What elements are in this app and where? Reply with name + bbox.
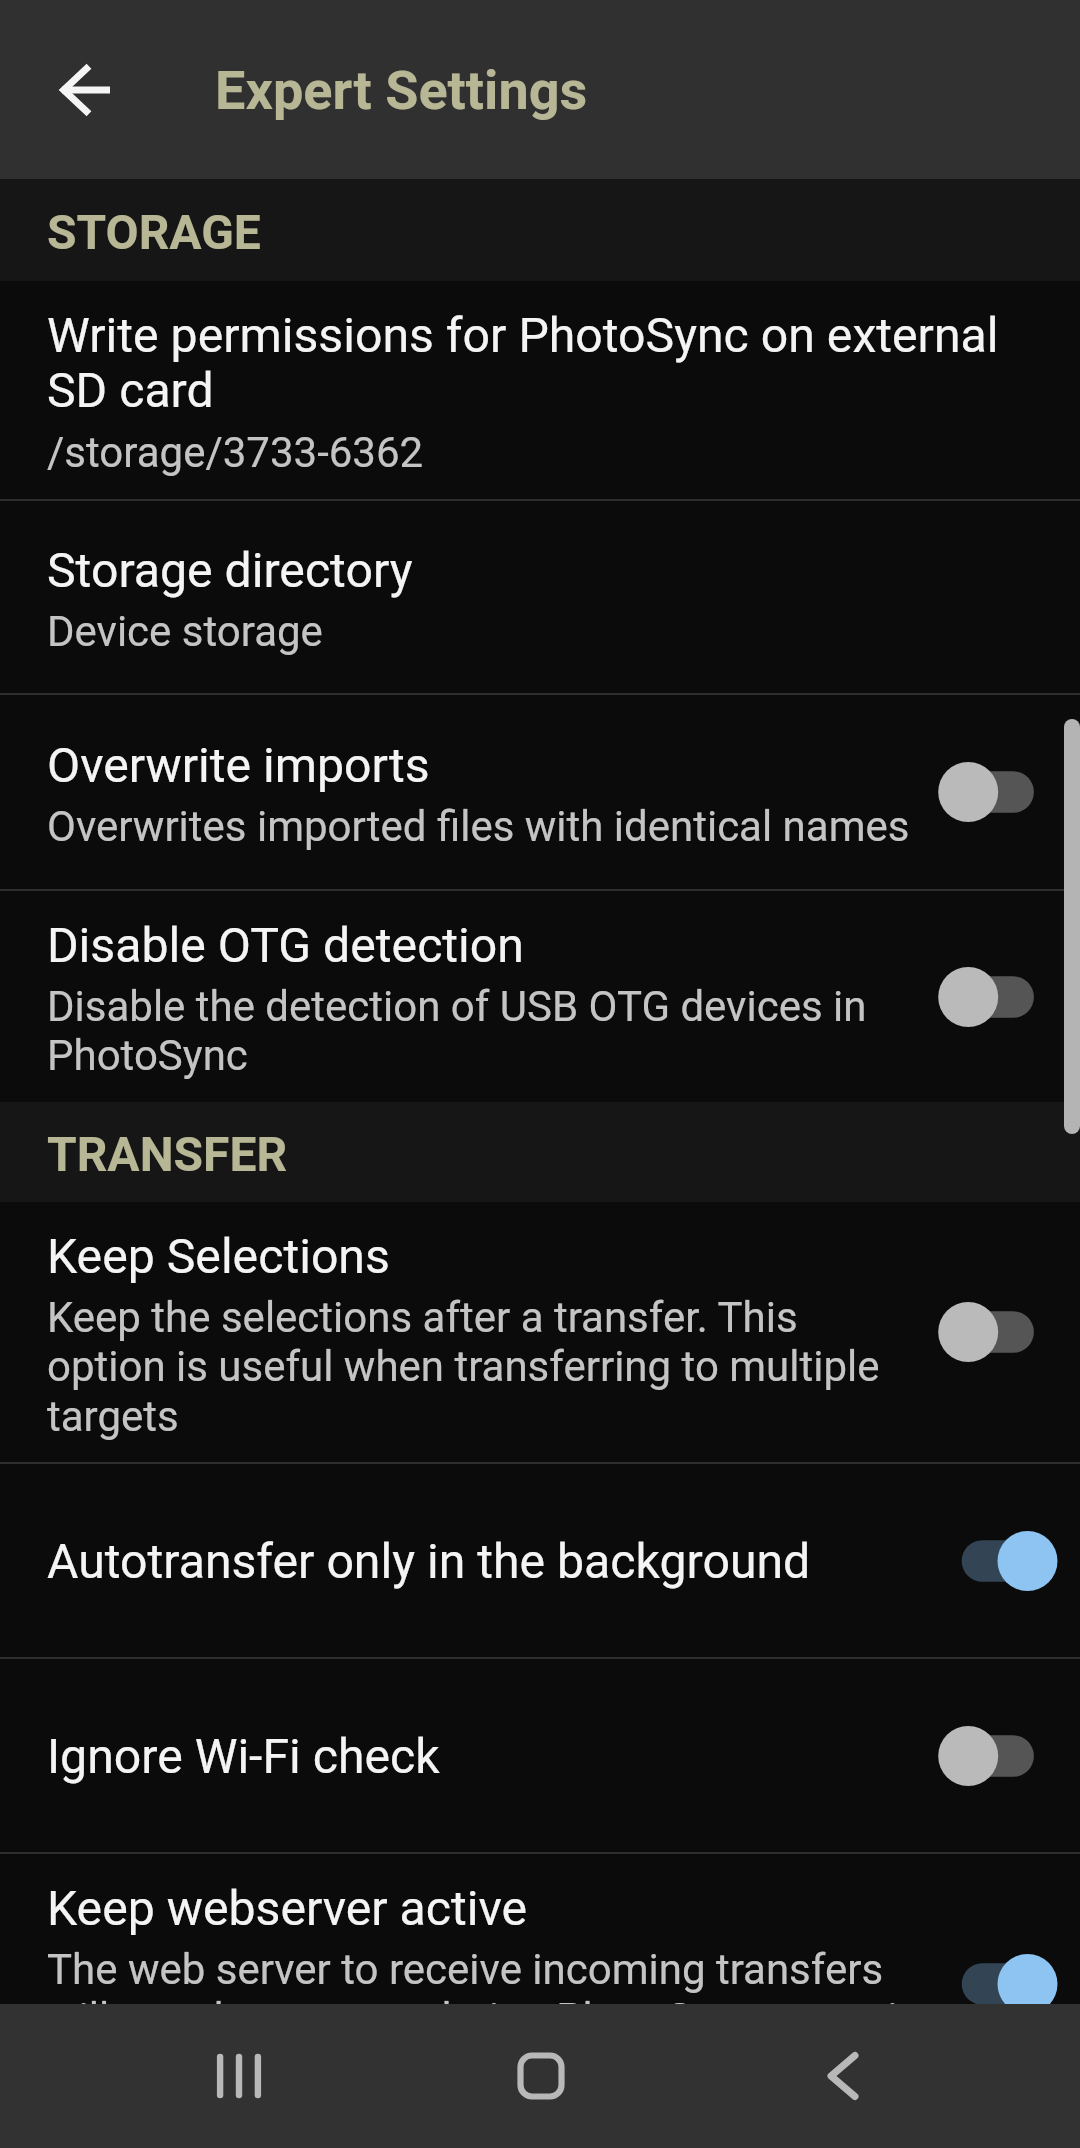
staticText: STORAGE [47,204,261,260]
button[interactable]: Ignore Wi-Fi check [0,1659,1080,1852]
button[interactable]: Back [773,2006,913,2146]
staticText: Write permissions for PhotoSync on exter… [47,307,999,419]
staticText: Keep webserver active [47,1880,528,1936]
button[interactable]: Disabled [913,747,1080,837]
button[interactable]: Enabled [913,1516,1080,1606]
button[interactable]: Write permissions for PhotoSync on exter… [0,281,1080,499]
button[interactable]: Keep Selections [0,1202,1080,1462]
button[interactable]: Autotransfer only in the background [0,1464,1080,1657]
button[interactable]: Disabled [913,1287,1080,1377]
button[interactable]: Disabled [913,952,1080,1042]
staticText: Storage directory [47,542,413,598]
button[interactable]: Enabled [913,1939,1080,2004]
staticText: Keep Selections [47,1228,390,1284]
button[interactable]: Overwrite imports [0,695,1080,889]
staticText: TRANSFER [47,1126,288,1182]
staticText: Device storage [47,607,323,656]
staticText: Ignore Wi-Fi check [47,1728,440,1784]
button[interactable]: Disable OTG detection [0,891,1080,1102]
button[interactable]: Home [471,2006,611,2146]
button[interactable]: Storage directory [0,501,1080,693]
button[interactable]: Recent apps [169,2006,309,2146]
button[interactable]: Keep webserver active [0,1854,1080,2004]
staticText: Overwrites imported files with identical… [47,802,910,851]
button[interactable]: Disabled [913,1711,1080,1801]
staticText: Expert Settings [215,59,588,122]
staticText: Autotransfer only in the background [47,1533,811,1589]
staticText: Disable OTG detection [47,917,524,973]
staticText: Disable the detection of USB OTG devices… [47,982,867,1080]
button[interactable]: Navigate up [24,28,148,152]
staticText: The web server to receive incoming trans… [47,1945,967,2004]
staticText: Keep the selections after a transfer. Th… [47,1293,880,1441]
staticText: Overwrite imports [47,737,430,793]
staticText: /storage/3733-6362 [47,428,424,477]
